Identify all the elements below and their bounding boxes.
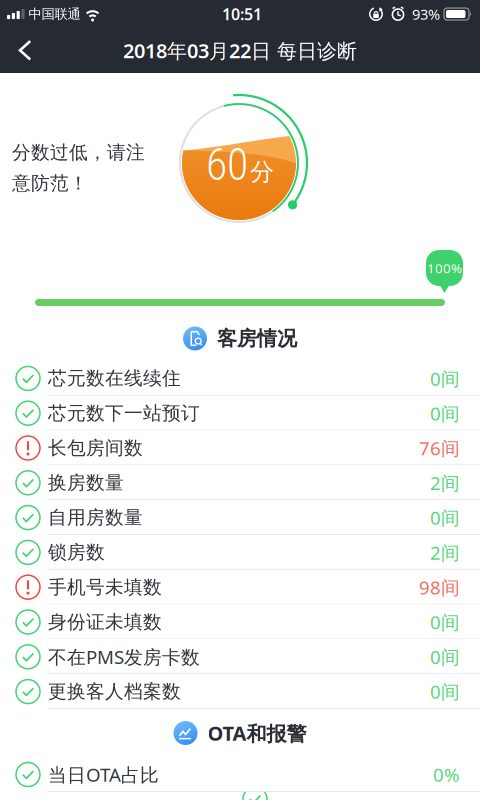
staticText: 意防范！: [12, 172, 88, 195]
staticText: 客房情况: [217, 326, 297, 351]
staticText: 93%: [412, 4, 440, 24]
staticText: 分数过低，请注: [12, 141, 145, 164]
staticText: 10:51: [222, 3, 262, 25]
staticText: 不在PMS发房卡数: [48, 644, 200, 669]
staticText: 当日OTA占比: [48, 762, 159, 787]
staticText: 自用房数量: [48, 506, 143, 529]
staticText: 2018年03月22日 每日诊断: [123, 37, 357, 64]
button[interactable]: 更换客人档案数: [0, 674, 480, 709]
staticText: 分: [250, 157, 274, 187]
button[interactable]: 芯元数下一站预订: [0, 396, 480, 431]
staticText: 更换客人档案数: [48, 680, 181, 703]
staticText: OTA和报警: [207, 720, 306, 746]
staticText: 60: [206, 139, 248, 191]
staticText: 76间: [419, 436, 460, 460]
button[interactable]: 手机号未填数: [0, 570, 480, 605]
button[interactable]: 锁房数: [0, 535, 480, 570]
button[interactable]: 自用房数量: [0, 500, 480, 535]
button[interactable]: 身份证未填数: [0, 605, 480, 639]
button[interactable]: 当日OTA占比: [0, 757, 480, 792]
staticText: 0间: [430, 679, 460, 704]
staticText: 手机号未填数: [48, 576, 162, 599]
staticText: 100%: [427, 259, 462, 277]
staticText: 中国联通: [29, 6, 81, 22]
button[interactable]: 不在PMS发房卡数: [0, 639, 480, 674]
button[interactable]: 长包房间数: [0, 431, 480, 465]
staticText: 2间: [430, 540, 460, 565]
staticText: 2间: [430, 470, 460, 495]
staticText: 锁房数: [48, 541, 105, 564]
button[interactable]: 芯元数在线续住: [0, 361, 480, 396]
staticText: 0%: [433, 762, 460, 787]
staticText: 芯元数在线续住: [48, 367, 181, 390]
staticText: 换房数量: [48, 471, 124, 494]
staticText: 98间: [419, 575, 460, 600]
staticText: 0间: [430, 644, 460, 669]
button[interactable]: Back: [0, 39, 53, 61]
staticText: 0间: [430, 610, 460, 634]
staticText: 0间: [430, 366, 460, 391]
staticText: 芯元数下一站预订: [48, 402, 200, 425]
staticText: 长包房间数: [48, 436, 143, 459]
staticText: 0间: [430, 401, 460, 426]
staticText: 身份证未填数: [48, 610, 162, 633]
staticText: 0间: [430, 505, 460, 530]
button[interactable]: 换房数量: [0, 465, 480, 500]
